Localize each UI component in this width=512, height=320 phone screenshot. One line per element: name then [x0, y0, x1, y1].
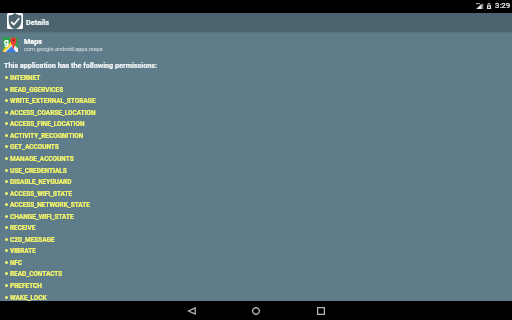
staticText: This application has the following permi…: [4, 61, 158, 69]
staticText: USE_CREDENTIALS: [10, 167, 67, 175]
button[interactable]: MANAGE_ACCOUNTS: [0, 153, 512, 164]
staticText: READ_CONTACTS: [10, 270, 63, 278]
button[interactable]: ACCESS_COARSE_LOCATION: [0, 107, 512, 118]
button[interactable]: App info: [7, 13, 23, 29]
staticText: INTERNET: [10, 74, 41, 82]
staticText: PREFETCH: [10, 282, 42, 290]
staticText: C2D_MESSAGE: [10, 236, 55, 244]
button[interactable]: PREFETCH: [0, 280, 512, 291]
button[interactable]: Recent apps: [300, 301, 341, 320]
staticText: GET_ACCOUNTS: [10, 143, 59, 151]
staticText: g: [4, 37, 9, 47]
button[interactable]: ACCESS_WIFI_STATE: [0, 188, 512, 199]
staticText: com.google.android.apps.maps: [24, 46, 103, 53]
button[interactable]: READ_GSERVICES: [0, 84, 512, 95]
button[interactable]: ACTIVITY_RECOGNITION: [0, 130, 512, 141]
button[interactable]: Home: [235, 301, 276, 320]
button[interactable]: ACCESS_FINE_LOCATION: [0, 118, 512, 129]
button[interactable]: READ_CONTACTS: [0, 268, 512, 279]
button[interactable]: ACCESS_NETWORK_STATE: [0, 199, 512, 210]
button[interactable]: NFC: [0, 257, 512, 268]
button[interactable]: DISABLE_KEYGUARD: [0, 176, 512, 187]
staticText: WAKE_LOCK: [10, 294, 47, 302]
button[interactable]: USE_CREDENTIALS: [0, 165, 512, 176]
staticText: ACCESS_WIFI_STATE: [10, 190, 73, 198]
button[interactable]: CHANGE_WIFI_STATE: [0, 211, 512, 222]
button[interactable]: INTERNET: [0, 72, 512, 83]
staticText: VIBRATE: [10, 247, 36, 255]
button[interactable]: VIBRATE: [0, 245, 512, 256]
staticText: WRITE_EXTERNAL_STORAGE: [10, 97, 96, 105]
staticText: DISABLE_KEYGUARD: [10, 178, 72, 186]
button[interactable]: WAKE_LOCK: [0, 292, 512, 303]
staticText: ACCESS_COARSE_LOCATION: [10, 109, 96, 117]
staticText: RECEIVE: [10, 224, 36, 232]
button[interactable]: WRITE_EXTERNAL_STORAGE: [0, 95, 512, 106]
staticText: 3:29: [495, 1, 511, 10]
button[interactable]: Back: [171, 301, 212, 320]
staticText: ACCESS_FINE_LOCATION: [10, 120, 85, 128]
staticText: ACTIVITY_RECOGNITION: [10, 132, 84, 140]
staticText: Maps: [24, 37, 42, 45]
staticText: CHANGE_WIFI_STATE: [10, 213, 74, 221]
button[interactable]: RECEIVE: [0, 222, 512, 233]
button[interactable]: C2D_MESSAGE: [0, 234, 512, 245]
staticText: Details: [26, 18, 50, 27]
staticText: READ_GSERVICES: [10, 86, 64, 94]
button[interactable]: g: [0, 34, 512, 55]
staticText: ACCESS_NETWORK_STATE: [10, 201, 90, 209]
staticText: NFC: [10, 259, 23, 267]
staticText: MANAGE_ACCOUNTS: [10, 155, 74, 163]
button[interactable]: GET_ACCOUNTS: [0, 141, 512, 152]
